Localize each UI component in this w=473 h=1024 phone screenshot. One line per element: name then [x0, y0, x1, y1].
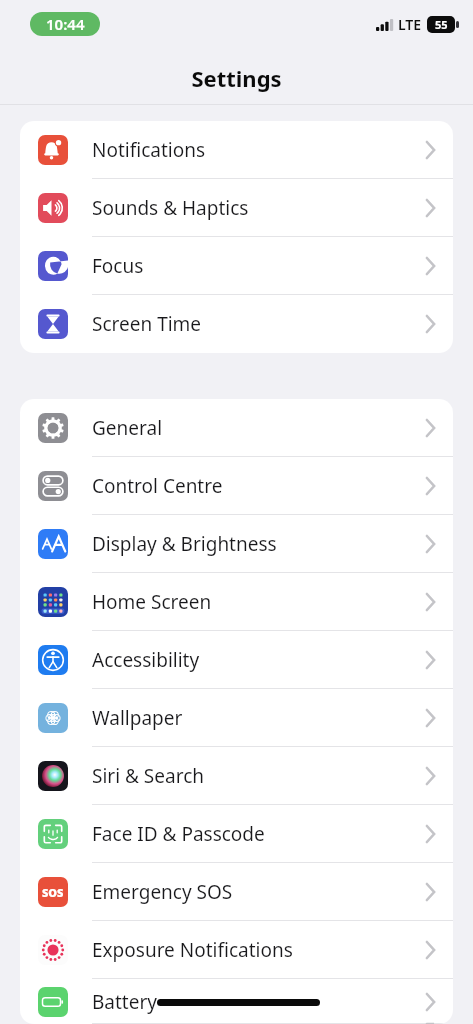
staticText: 10:44	[46, 14, 85, 34]
staticText: Settings	[191, 63, 282, 93]
staticText: Face ID & Passcode	[92, 821, 426, 847]
staticText: Notifications	[92, 137, 426, 163]
button[interactable]: Wallpaper	[20, 689, 453, 747]
staticText: Display & Brightness	[92, 531, 426, 557]
button[interactable]: General	[20, 399, 453, 457]
staticText: Siri & Search	[92, 763, 426, 789]
staticText: Screen Time	[92, 311, 426, 337]
staticText: Control Centre	[92, 473, 426, 499]
staticText: Battery	[92, 989, 426, 1015]
button[interactable]: Exposure Notifications	[20, 921, 453, 979]
button[interactable]: Sounds & Haptics	[20, 179, 453, 237]
button[interactable]: Notifications	[20, 121, 453, 179]
staticText: Sounds & Haptics	[92, 195, 426, 221]
button[interactable]: Accessibility	[20, 631, 453, 689]
staticText: Exposure Notifications	[92, 937, 426, 963]
button[interactable]: Battery	[20, 979, 453, 1024]
staticText: Home Screen	[92, 589, 426, 615]
button[interactable]: Siri & Search	[20, 747, 453, 805]
staticText: General	[92, 415, 426, 441]
button[interactable]: Face ID & Passcode	[20, 805, 453, 863]
staticText: Emergency SOS	[92, 879, 426, 905]
button[interactable]: Home Screen	[20, 573, 453, 631]
button[interactable]: SOS	[20, 863, 453, 921]
button[interactable]: Display & Brightness	[20, 515, 453, 573]
staticText: Focus	[92, 253, 426, 279]
staticText: Wallpaper	[92, 705, 426, 731]
button[interactable]: Screen Time	[20, 295, 453, 353]
staticText: LTE	[398, 15, 422, 34]
staticText: SOS	[42, 885, 64, 900]
button[interactable]: Focus	[20, 237, 453, 295]
staticText: Accessibility	[92, 647, 426, 673]
staticText: 55	[435, 17, 448, 32]
button[interactable]: Control Centre	[20, 457, 453, 515]
